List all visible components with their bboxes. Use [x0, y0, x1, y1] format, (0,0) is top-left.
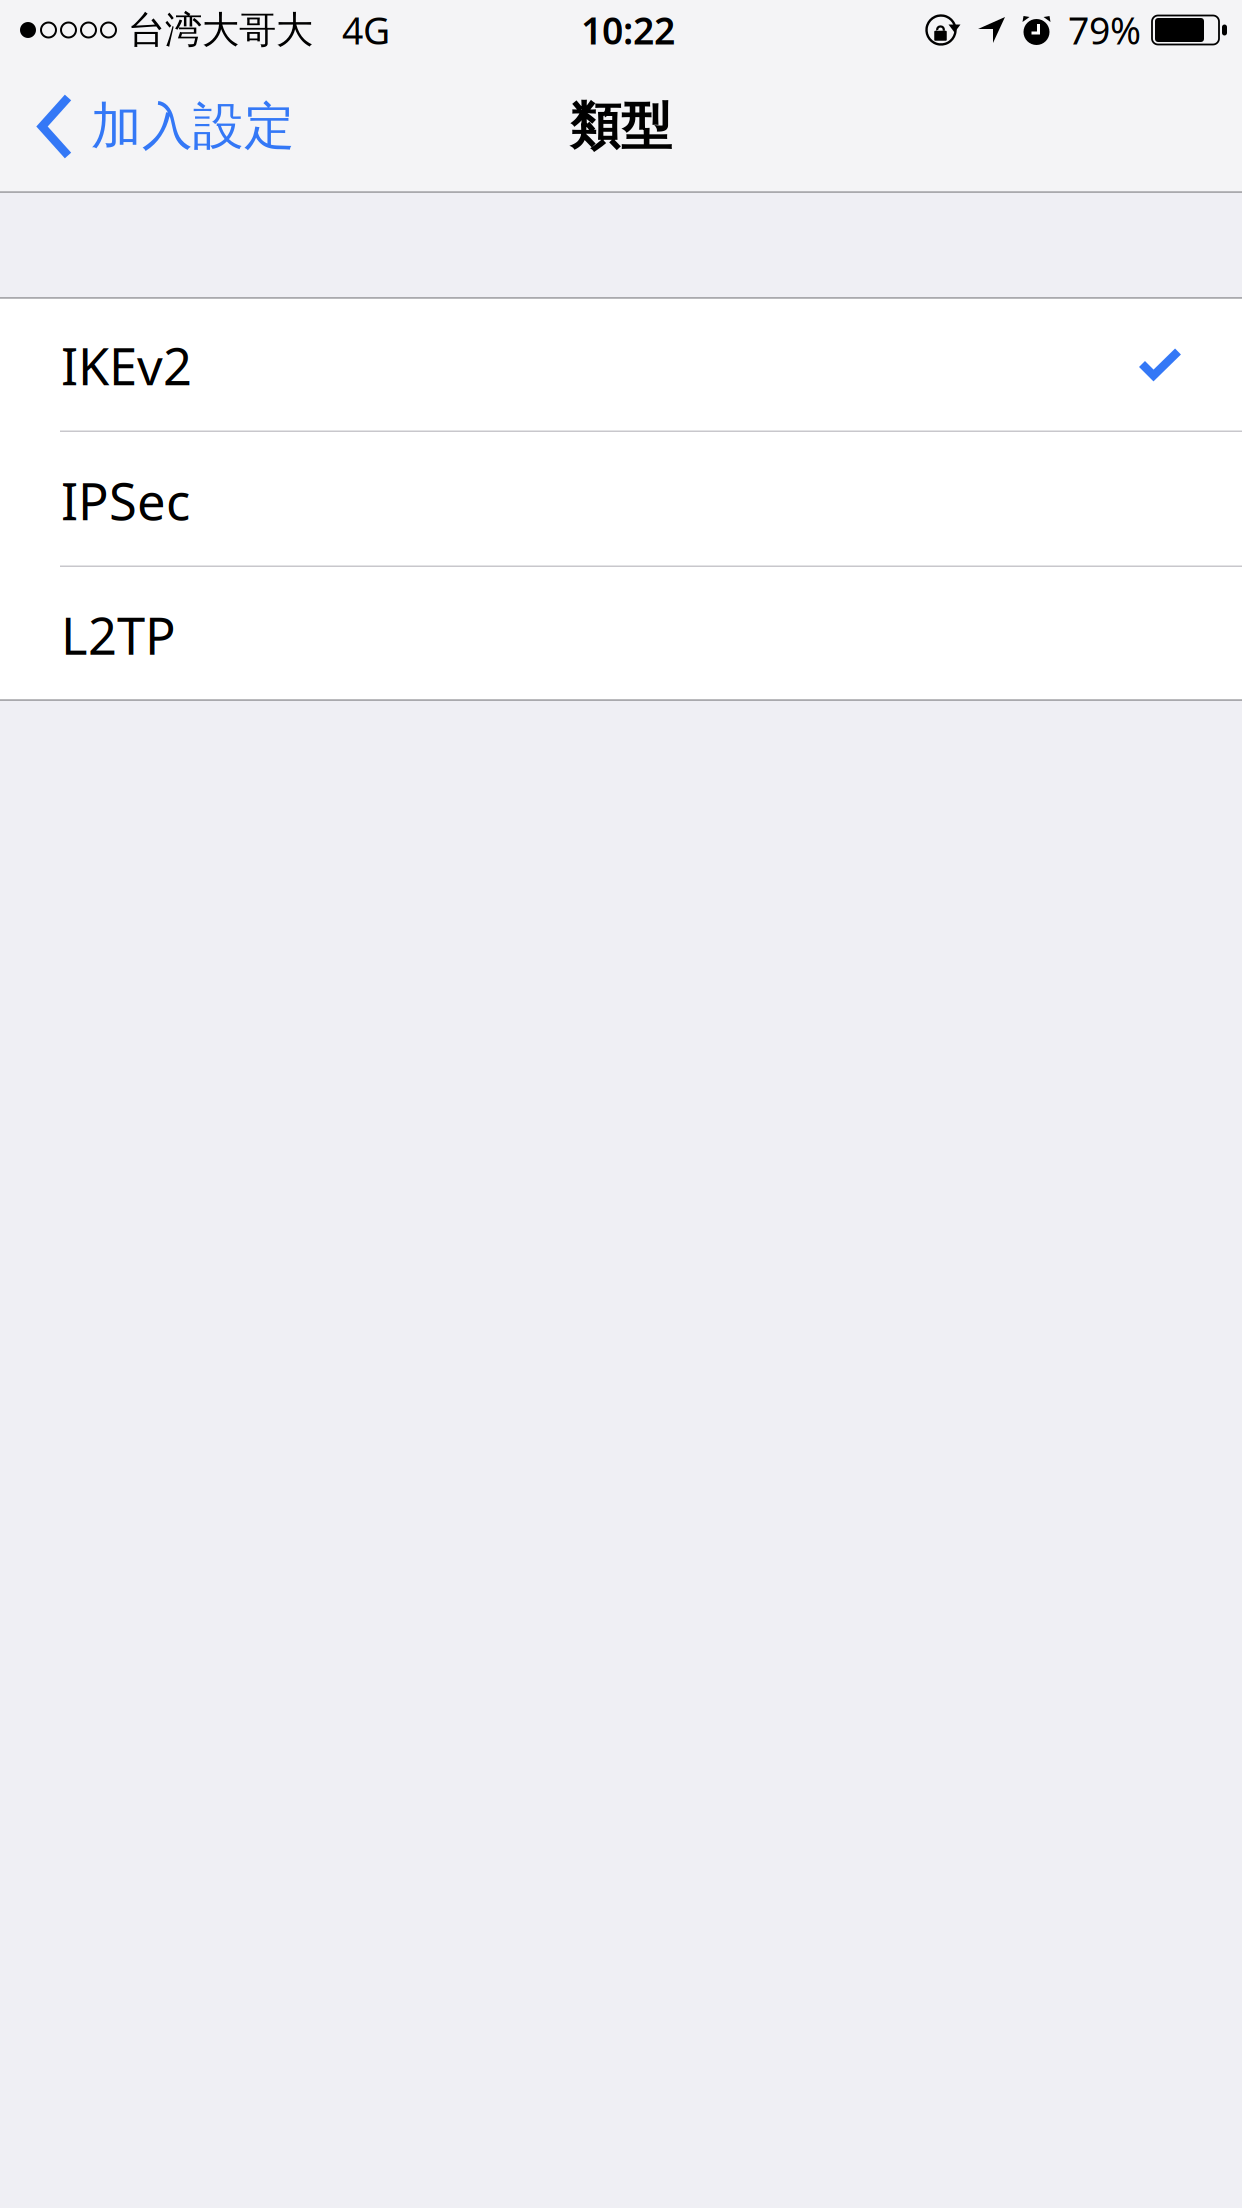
staticText: 10:22 [581, 5, 675, 55]
staticText: IKEv2 [61, 332, 192, 399]
button[interactable]: L2TP [0, 567, 1242, 701]
staticText: 加入設定 [91, 95, 295, 158]
staticText: 台湾大哥大 [128, 7, 313, 53]
staticText: L2TP [61, 601, 176, 669]
button[interactable]: 加入設定 [0, 60, 319, 192]
button[interactable]: IKEv2 [0, 297, 1242, 432]
staticText: 79% [1068, 5, 1141, 55]
staticText: 類型 [570, 95, 672, 158]
staticText: IPSec [61, 467, 190, 534]
button[interactable]: IPSec [0, 432, 1242, 567]
staticText: 4G [342, 5, 390, 55]
